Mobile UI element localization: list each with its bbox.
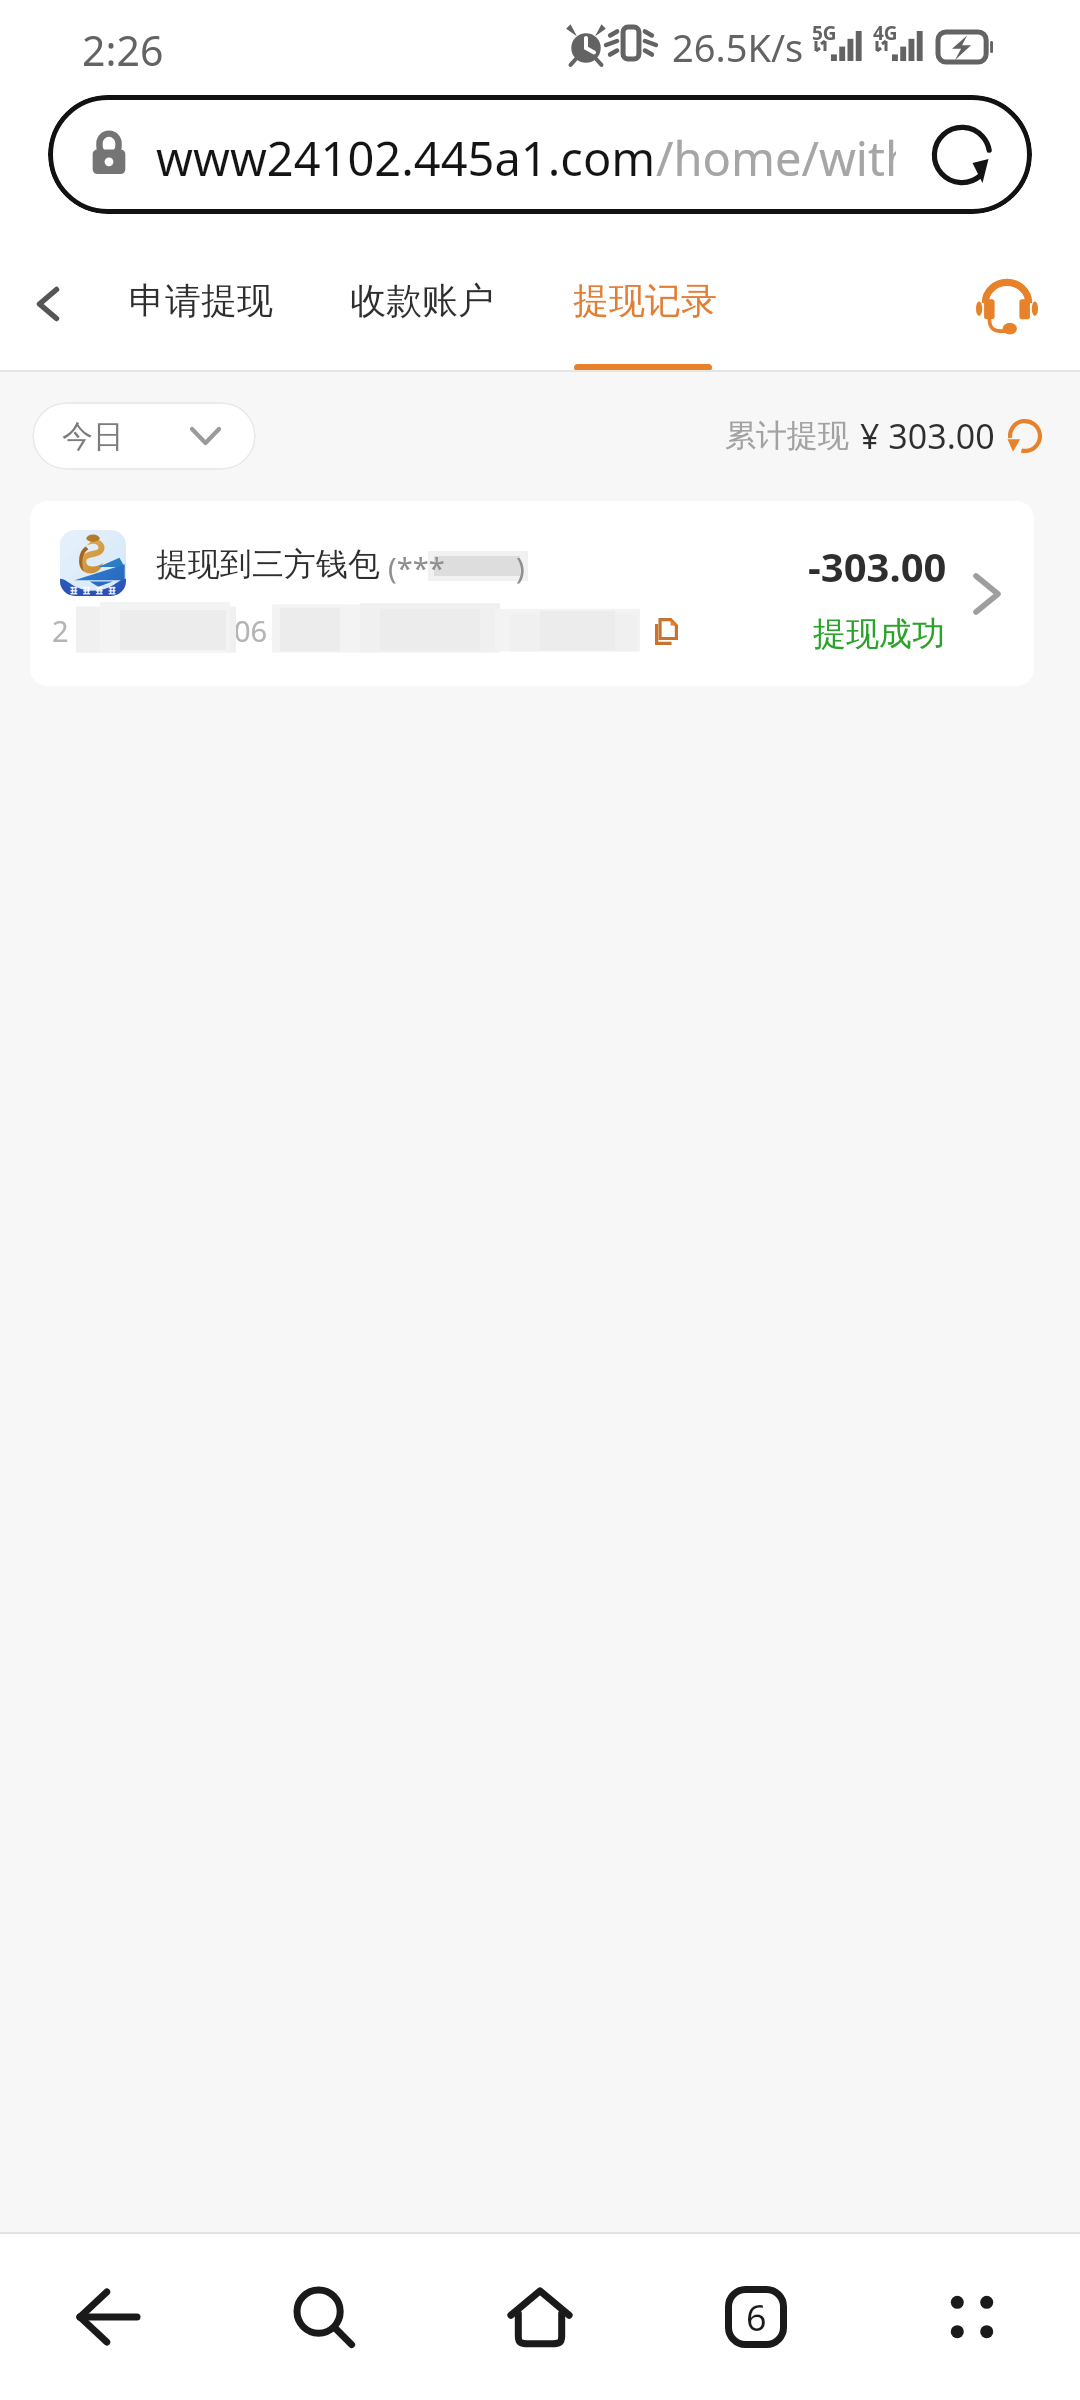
- button[interactable]: www24102.445a1.com: [48, 95, 1032, 214]
- staticText: 06: [234, 611, 268, 650]
- staticText: (***: [388, 548, 445, 587]
- staticText: -303.00: [808, 539, 947, 593]
- button[interactable]: Back: [0, 2234, 216, 2400]
- button[interactable]: Back: [4, 260, 92, 348]
- staticText: 申请提现: [129, 278, 273, 323]
- button[interactable]: Tabs: [648, 2234, 864, 2400]
- staticText: 26.5K/s: [672, 21, 804, 73]
- staticText: /home/with: [656, 126, 896, 190]
- staticText: 累计提现: [725, 416, 849, 455]
- button[interactable]: 申请提现: [111, 266, 287, 370]
- button[interactable]: Customer service: [964, 264, 1050, 350]
- staticText: www24102.445a1.com: [156, 126, 656, 190]
- staticText: ¥ 303.00: [860, 413, 995, 459]
- staticText: 2:26: [82, 22, 164, 78]
- button[interactable]: 提现到三方钱包: [30, 501, 1034, 686]
- button[interactable]: Copy: [634, 599, 698, 663]
- staticText: 提现到三方钱包: [156, 544, 380, 584]
- staticText: 2: [52, 611, 69, 650]
- staticText: 4G: [873, 20, 898, 46]
- button[interactable]: Home: [432, 2234, 648, 2400]
- button[interactable]: 今日: [32, 402, 256, 470]
- staticText: ): [516, 548, 525, 587]
- button[interactable]: Reload: [922, 115, 1002, 195]
- button[interactable]: 收款账户: [332, 266, 508, 370]
- staticText: 5G: [812, 20, 837, 46]
- button[interactable]: Search: [216, 2234, 432, 2400]
- staticText: 收款账户: [350, 278, 494, 323]
- button[interactable]: Refresh: [999, 410, 1051, 462]
- button[interactable]: 提现记录: [555, 266, 731, 370]
- staticText: 提现记录: [573, 278, 717, 323]
- staticText: 提现成功: [813, 613, 945, 655]
- staticText: 今日: [62, 417, 124, 456]
- staticText: 6: [746, 2293, 767, 2342]
- button[interactable]: Menu: [864, 2234, 1080, 2400]
